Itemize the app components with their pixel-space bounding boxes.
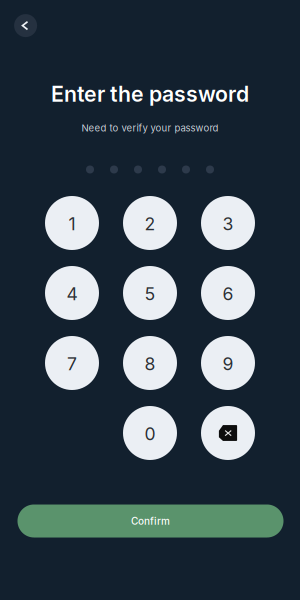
staticText: Enter the password bbox=[51, 81, 249, 107]
button[interactable]: 0 bbox=[123, 406, 177, 460]
staticText: 7 bbox=[67, 353, 77, 374]
button[interactable]: 2 bbox=[123, 196, 177, 250]
button[interactable]: 7 bbox=[45, 336, 99, 390]
button[interactable]: 9 bbox=[201, 336, 255, 390]
staticText: Need to verify your password bbox=[81, 122, 218, 134]
staticText: 5 bbox=[144, 283, 155, 304]
button[interactable]: 4 bbox=[45, 266, 99, 320]
staticText: 8 bbox=[144, 353, 155, 374]
button[interactable]: Delete bbox=[201, 406, 255, 460]
staticText: Confirm bbox=[131, 515, 170, 527]
staticText: 9 bbox=[222, 353, 233, 374]
staticText: 6 bbox=[222, 283, 233, 304]
staticText: 1 bbox=[68, 213, 75, 234]
staticText: 3 bbox=[222, 213, 233, 234]
staticText: 2 bbox=[144, 213, 155, 234]
staticText: 0 bbox=[144, 423, 155, 444]
button[interactable]: 6 bbox=[201, 266, 255, 320]
button[interactable]: 8 bbox=[123, 336, 177, 390]
button[interactable]: 5 bbox=[123, 266, 177, 320]
staticText: 4 bbox=[66, 283, 77, 304]
button[interactable]: 1 bbox=[45, 196, 99, 250]
button[interactable]: Confirm bbox=[17, 504, 283, 537]
button[interactable]: Back bbox=[14, 14, 37, 37]
button[interactable]: 3 bbox=[201, 196, 255, 250]
